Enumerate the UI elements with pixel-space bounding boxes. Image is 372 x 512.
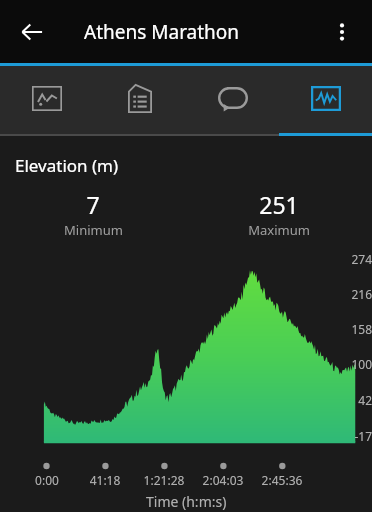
button[interactable]: Charts tab (279, 67, 372, 135)
staticText: 100 (351, 356, 372, 372)
staticText: 7 (86, 189, 100, 220)
staticText: Athens Marathon (84, 19, 240, 45)
staticText: Time (h:m:s) (146, 492, 227, 511)
staticText: 216 (351, 286, 372, 302)
staticText: -17 (354, 428, 372, 444)
button[interactable]: Map tab (0, 67, 93, 135)
staticText: Maximum (248, 221, 310, 239)
staticText: 41:18 (75, 472, 135, 488)
button[interactable]: Laps tab (186, 67, 279, 135)
staticText: 274 (351, 251, 372, 267)
staticText: 42 (358, 392, 372, 408)
staticText: 0:00 (17, 472, 77, 488)
staticText: 2:04:03 (193, 472, 253, 488)
button[interactable]: More options (318, 8, 366, 56)
button[interactable]: Back (8, 8, 56, 56)
staticText: 251 (259, 189, 299, 220)
button[interactable]: Details tab (93, 67, 186, 135)
staticText: 158 (351, 321, 372, 337)
staticText: Minimum (64, 221, 123, 239)
staticText: 1:21:28 (134, 472, 194, 488)
staticText: Elevation (m) (15, 154, 119, 177)
staticText: 2:45:36 (252, 472, 312, 488)
